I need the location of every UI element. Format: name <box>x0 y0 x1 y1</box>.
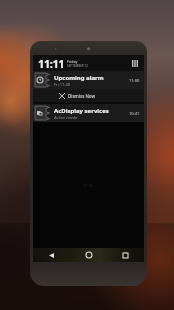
button[interactable]: Upcoming alarm <box>33 71 144 89</box>
staticText: Fri 11:48 <box>54 82 71 87</box>
button[interactable]: Recents <box>107 248 144 262</box>
staticText: Friday <box>67 59 78 64</box>
staticText: SEPTEMBER 12 <box>67 64 88 68</box>
staticText: Dismiss Now <box>68 93 96 99</box>
button[interactable]: Dismiss Now <box>33 89 144 102</box>
button[interactable]: Home <box>70 248 107 262</box>
staticText: Upcoming alarm <box>54 74 104 82</box>
staticText: 11:11 <box>38 56 65 71</box>
staticText: 11:50 <box>83 183 94 188</box>
staticText: 11:00 <box>129 78 140 83</box>
button[interactable]: AcDisplay services <box>33 104 144 122</box>
button[interactable]: Back <box>33 248 70 262</box>
staticText: Active mode <box>54 115 78 120</box>
other: Status icons <box>132 60 139 67</box>
staticText: 10:41 <box>129 111 140 116</box>
staticText: AcDisplay services <box>54 107 109 115</box>
